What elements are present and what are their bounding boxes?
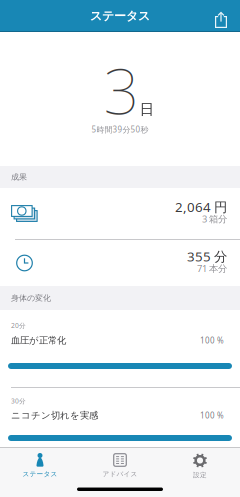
- staticText: 355 分: [187, 247, 227, 265]
- staticText: 2,064 円: [175, 198, 227, 216]
- staticText: ステータス: [22, 470, 57, 478]
- staticText: アドバイス: [102, 470, 137, 478]
- button[interactable]: 355 分: [0, 240, 240, 286]
- button[interactable]: Share: [207, 3, 240, 29]
- staticText: 100 %: [200, 335, 224, 346]
- staticText: ニコチン切れを実感: [11, 410, 98, 421]
- staticText: 71 本分: [197, 262, 227, 275]
- staticText: 3: [103, 48, 139, 132]
- staticText: 日: [139, 100, 154, 118]
- staticText: 30分: [11, 397, 26, 405]
- staticText: ステータス: [90, 9, 150, 23]
- staticText: 3 箱分: [202, 213, 227, 225]
- staticText: 身体の変化: [11, 293, 51, 303]
- staticText: 成果: [11, 172, 27, 182]
- staticText: 血圧が正常化: [11, 335, 66, 346]
- staticText: 100 %: [200, 410, 224, 421]
- button[interactable]: 設定: [160, 447, 240, 497]
- staticText: 5時間39分50秒: [91, 124, 148, 135]
- staticText: 20分: [11, 321, 26, 330]
- staticText: 設定: [193, 471, 207, 479]
- button[interactable]: 2,064 円: [0, 188, 240, 239]
- button[interactable]: アドバイス: [80, 447, 160, 497]
- button[interactable]: ステータス: [0, 447, 80, 497]
